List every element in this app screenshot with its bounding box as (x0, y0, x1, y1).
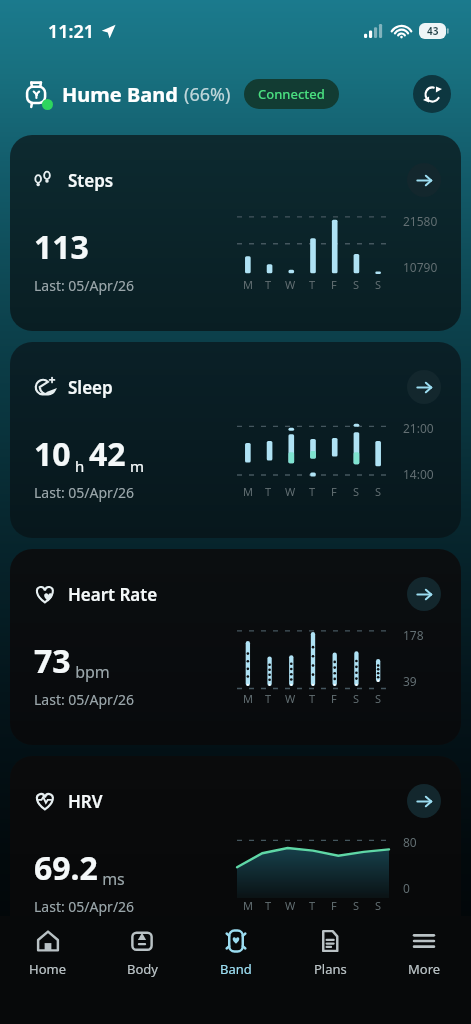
staticText: W (285, 484, 296, 499)
staticText: 69.2 (34, 846, 98, 890)
button[interactable]: Open Steps (407, 163, 441, 197)
staticText: 178 (403, 627, 424, 643)
staticText: Heart Rate (68, 583, 158, 606)
staticText: Home (29, 960, 66, 978)
button[interactable]: Plans (283, 928, 377, 1024)
staticText: Sleep (68, 376, 113, 399)
staticText: T (309, 898, 316, 913)
staticText: Connected (258, 85, 325, 103)
staticText: h (71, 456, 89, 476)
staticText: 80 (403, 834, 417, 850)
staticText: M (243, 484, 253, 499)
staticText: Body (127, 960, 158, 978)
staticText: Last: 05/Apr/26 (34, 897, 135, 916)
staticText: W (285, 898, 296, 913)
staticText: F (331, 898, 337, 913)
staticText: 14:00 (403, 466, 434, 482)
staticText: m (126, 456, 144, 476)
button[interactable]: Heart Rate (10, 549, 461, 745)
staticText: 21580 (403, 213, 438, 229)
staticText: Hume Band (62, 81, 178, 108)
staticText: Last: 05/Apr/26 (34, 276, 135, 295)
button[interactable]: Band (189, 928, 283, 1024)
staticText: T (265, 484, 272, 499)
staticText: 42 (89, 432, 126, 476)
staticText: T (309, 484, 316, 499)
staticText: S (375, 898, 382, 913)
button[interactable]: Open Sleep (407, 370, 441, 404)
staticText: Steps (68, 169, 114, 192)
button[interactable]: Sleep (10, 342, 461, 538)
button[interactable]: HRV (10, 756, 461, 952)
staticText: bpm (71, 661, 110, 683)
button[interactable]: More (377, 928, 471, 1024)
staticText: 10790 (403, 259, 438, 275)
staticText: ms (98, 868, 125, 890)
staticText: 21:00 (403, 420, 434, 436)
button[interactable]: Open Heart Rate (407, 577, 441, 611)
staticText: More (408, 960, 441, 978)
staticText: 0 (403, 880, 410, 896)
staticText: S (375, 484, 382, 499)
button[interactable]: Hume Band (22, 79, 339, 109)
staticText: T (309, 691, 316, 706)
button[interactable]: Body (95, 928, 189, 1024)
staticText: (66%) (184, 82, 231, 107)
staticText: S (353, 484, 360, 499)
staticText: F (331, 691, 337, 706)
staticText: Band (220, 960, 252, 978)
staticText: Last: 05/Apr/26 (34, 483, 135, 502)
staticText: Last: 05/Apr/26 (34, 690, 135, 709)
button[interactable]: Steps (10, 135, 461, 331)
button[interactable]: Refresh (413, 75, 451, 113)
staticText: T (265, 277, 272, 292)
staticText: F (331, 277, 337, 292)
staticText: M (243, 277, 253, 292)
staticText: W (285, 691, 296, 706)
staticText: HRV (68, 790, 103, 813)
staticText: S (353, 277, 360, 292)
staticText: 113 (34, 225, 89, 269)
staticText: S (353, 898, 360, 913)
staticText: W (285, 277, 296, 292)
staticText: S (353, 691, 360, 706)
staticText: M (243, 691, 253, 706)
staticText: Plans (314, 960, 347, 978)
button[interactable]: Connected (244, 79, 339, 109)
staticText: M (243, 898, 253, 913)
staticText: F (331, 484, 337, 499)
staticText: S (375, 277, 382, 292)
staticText: 10 (34, 432, 71, 476)
staticText: S (375, 691, 382, 706)
button[interactable]: Open HRV (407, 784, 441, 818)
staticText: 73 (34, 639, 71, 683)
staticText: T (265, 691, 272, 706)
staticText: T (309, 277, 316, 292)
staticText: 39 (403, 673, 417, 689)
staticText: 11:21 (48, 19, 95, 44)
staticText: T (265, 898, 272, 913)
staticText: 43 (427, 24, 439, 38)
button[interactable]: Home (0, 928, 95, 1024)
